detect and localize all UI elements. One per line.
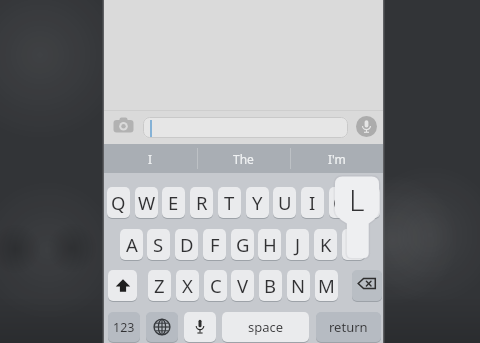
staticText: I <box>309 190 316 215</box>
staticText: R <box>196 190 208 215</box>
staticText: 123 <box>113 319 135 336</box>
staticText: Z <box>154 273 165 298</box>
button[interactable]: Y <box>246 187 269 218</box>
staticText: space <box>248 318 284 336</box>
button[interactable]: space <box>222 312 309 342</box>
button[interactable] <box>143 117 348 138</box>
button[interactable]: K <box>314 229 337 260</box>
button[interactable]: U <box>273 187 296 218</box>
button[interactable]: G <box>231 229 254 260</box>
staticText: P <box>363 190 375 215</box>
staticText: B <box>264 273 277 298</box>
button[interactable]: P <box>357 187 380 218</box>
button[interactable]: V <box>231 270 254 301</box>
button[interactable]: I <box>104 144 197 174</box>
staticText: L <box>349 179 365 218</box>
button[interactable] <box>184 312 216 342</box>
button[interactable]: 123 <box>108 312 140 342</box>
staticText: C <box>210 273 222 298</box>
staticText: U <box>278 190 292 215</box>
staticText: J <box>295 232 301 257</box>
staticText: D <box>180 232 194 257</box>
staticText: return <box>329 318 368 336</box>
button[interactable]: I <box>301 187 324 218</box>
button[interactable]: E <box>162 187 185 218</box>
button[interactable] <box>146 312 178 342</box>
button[interactable] <box>108 270 137 301</box>
button[interactable]: I'm <box>290 144 383 174</box>
staticText: Y <box>252 190 263 215</box>
button[interactable]: D <box>175 229 198 260</box>
staticText: A <box>126 232 138 257</box>
staticText: I <box>148 151 153 167</box>
button[interactable]: S <box>147 229 170 260</box>
staticText: T <box>224 190 235 215</box>
button[interactable]: L <box>335 179 379 218</box>
staticText: W <box>138 190 156 215</box>
button[interactable]: O <box>329 187 352 218</box>
button[interactable]: return <box>316 312 381 342</box>
staticText: G <box>236 232 250 257</box>
staticText: S <box>153 232 164 257</box>
button[interactable]: Z <box>148 270 171 301</box>
button[interactable]: A <box>120 229 143 260</box>
button[interactable]: L <box>342 229 365 260</box>
button[interactable]: H <box>258 229 281 260</box>
staticText: X <box>182 273 193 298</box>
staticText: E <box>168 190 179 215</box>
staticText: Q <box>111 190 126 215</box>
button[interactable]: Q <box>107 187 130 218</box>
staticText: O <box>333 190 348 215</box>
button[interactable]: M <box>315 270 338 301</box>
staticText: I'm <box>328 151 346 167</box>
button[interactable]: C <box>204 270 227 301</box>
button[interactable] <box>356 116 377 137</box>
button[interactable]: J <box>286 229 309 260</box>
button[interactable]: The <box>197 144 290 174</box>
staticText: F <box>210 232 220 257</box>
staticText: M <box>318 273 335 298</box>
staticText: V <box>237 273 249 298</box>
staticText: The <box>233 151 254 167</box>
button[interactable] <box>352 270 382 301</box>
staticText: K <box>320 232 332 257</box>
button[interactable]: X <box>176 270 199 301</box>
button[interactable]: B <box>259 270 282 301</box>
button[interactable]: T <box>218 187 241 218</box>
button[interactable]: N <box>287 270 310 301</box>
staticText: N <box>291 273 306 298</box>
button[interactable]: F <box>203 229 226 260</box>
button[interactable]: R <box>190 187 213 218</box>
staticText: H <box>263 232 277 257</box>
button[interactable]: W <box>135 187 158 218</box>
